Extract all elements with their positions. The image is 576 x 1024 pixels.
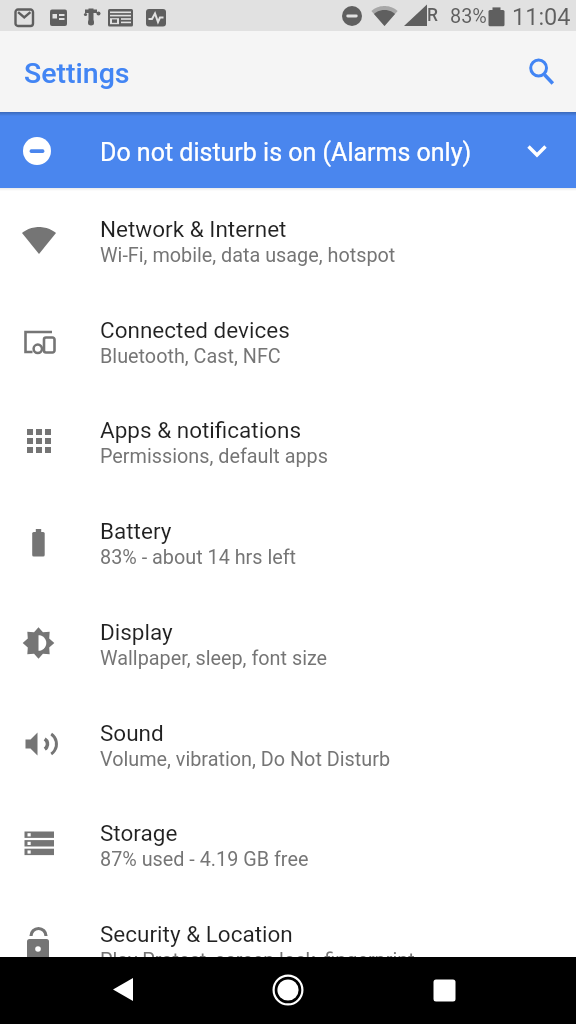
staticText: Wallpaper, sleep, font size	[100, 647, 328, 670]
button[interactable]: Do not disturb is on (Alarms only)	[0, 112, 576, 188]
staticText: 87% used - 4.19 GB free	[100, 848, 309, 871]
staticText: Settings	[24, 57, 130, 90]
staticText: Battery	[100, 518, 172, 544]
staticText: Connected devices	[100, 317, 290, 343]
staticText: Network & Internet	[100, 216, 287, 242]
staticText: 11:04	[512, 3, 571, 31]
staticText: Sound	[100, 720, 164, 746]
staticText: Play Protect, screen lock, fingerprint	[100, 949, 415, 972]
button[interactable]: Security & Location	[0, 893, 576, 994]
staticText: R	[427, 5, 438, 26]
button[interactable]: Sound	[0, 692, 576, 793]
button[interactable]: Battery	[0, 490, 576, 591]
staticText: Wi-Fi, mobile, data usage, hotspot	[100, 244, 396, 267]
staticText: Bluetooth, Cast, NFC	[100, 345, 281, 368]
button[interactable]: Display	[0, 591, 576, 692]
button[interactable]: Connected devices	[0, 289, 576, 390]
staticText: Apps & notifications	[100, 417, 301, 443]
staticText: Security & Location	[100, 921, 293, 947]
staticText: 83% - about 14 hrs left	[100, 546, 297, 569]
staticText: Display	[100, 619, 173, 645]
staticText: Do not disturb is on (Alarms only)	[100, 138, 472, 167]
staticText: Storage	[100, 820, 178, 846]
staticText: Permissions, default apps	[100, 445, 328, 468]
staticText: Volume, vibration, Do Not Disturb	[100, 748, 391, 771]
staticText: 83%	[450, 5, 487, 28]
button[interactable]: Storage	[0, 792, 576, 893]
button[interactable]	[422, 968, 466, 1012]
button[interactable]: Network & Internet	[0, 188, 576, 289]
button[interactable]: Apps & notifications	[0, 389, 576, 490]
button[interactable]	[103, 968, 147, 1012]
button[interactable]	[266, 968, 310, 1012]
button[interactable]	[518, 79, 562, 123]
